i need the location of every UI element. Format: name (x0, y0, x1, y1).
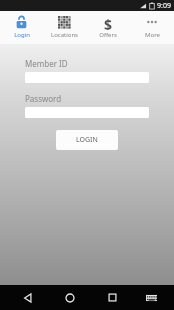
staticText: $ (104, 15, 113, 30)
staticText: Password (25, 93, 62, 104)
button[interactable]: Keyboard (134, 285, 168, 310)
button[interactable]: LOGIN (56, 130, 118, 150)
other: Offers (102, 15, 115, 30)
button[interactable]: Login (0, 11, 43, 39)
other: Login (16, 15, 27, 29)
staticText: LOGIN (76, 135, 98, 145)
staticText: Offers (99, 31, 117, 39)
staticText: Login (14, 31, 30, 39)
button[interactable]: More (130, 11, 174, 39)
staticText: 9:09 (157, 1, 171, 11)
button[interactable]: Home (48, 285, 91, 310)
staticText: Member ID (25, 58, 68, 69)
button[interactable]: Offers (86, 11, 130, 39)
staticText: More (145, 31, 160, 39)
button[interactable]: Recents (91, 285, 134, 310)
staticText: Locations (51, 31, 78, 39)
other: Locations (58, 16, 71, 29)
other: More (145, 15, 159, 29)
button[interactable]: Locations (43, 11, 86, 39)
button[interactable]: Back (6, 285, 48, 310)
